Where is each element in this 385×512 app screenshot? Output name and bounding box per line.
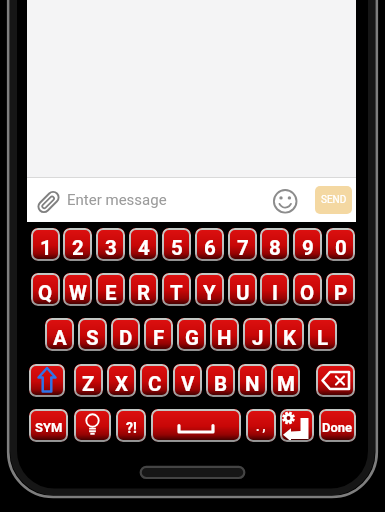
- button[interactable]: [29, 364, 65, 397]
- button[interactable]: S: [78, 318, 107, 351]
- staticText: . ,: [256, 420, 266, 434]
- button[interactable]: 6: [195, 228, 224, 261]
- button[interactable]: [316, 364, 355, 397]
- button[interactable]: 7: [228, 228, 257, 261]
- staticText: 0: [335, 236, 347, 260]
- button[interactable]: P: [326, 273, 355, 306]
- button[interactable]: C: [140, 364, 169, 397]
- button[interactable]: 4: [129, 228, 158, 261]
- staticText: M: [277, 372, 295, 396]
- button[interactable]: 1: [31, 228, 60, 261]
- staticText: 7: [237, 236, 249, 260]
- button[interactable]: SEND: [315, 186, 352, 214]
- button[interactable]: 5: [162, 228, 191, 261]
- staticText: R: [137, 281, 151, 305]
- button[interactable]: Q: [31, 273, 60, 306]
- button[interactable]: X: [107, 364, 136, 397]
- staticText: K: [283, 326, 297, 350]
- button[interactable]: A: [45, 318, 74, 351]
- button[interactable]: V: [173, 364, 202, 397]
- button[interactable]: E: [96, 273, 125, 306]
- staticText: Done: [322, 420, 353, 435]
- button[interactable]: O: [293, 273, 322, 306]
- button[interactable]: . ,: [246, 409, 276, 442]
- staticText: W: [69, 281, 87, 305]
- staticText: SYM: [35, 420, 63, 435]
- staticText: Y: [203, 281, 216, 305]
- staticText: I: [272, 281, 278, 305]
- staticText: D: [119, 326, 133, 350]
- button[interactable]: 0: [326, 228, 355, 261]
- staticText: ?!: [126, 420, 137, 436]
- button[interactable]: [280, 409, 314, 442]
- staticText: T: [170, 281, 183, 305]
- staticText: V: [181, 372, 195, 396]
- button[interactable]: W: [63, 273, 92, 306]
- staticText: L: [317, 326, 329, 350]
- staticText: E: [105, 281, 117, 305]
- button[interactable]: I: [260, 273, 289, 306]
- button[interactable]: H: [210, 318, 239, 351]
- button[interactable]: M: [271, 364, 300, 397]
- staticText: Z: [82, 372, 95, 396]
- staticText: X: [115, 372, 129, 396]
- staticText: 2: [72, 236, 84, 260]
- staticText: P: [334, 281, 348, 305]
- staticText: 4: [138, 236, 150, 260]
- button[interactable]: Enter message: [27, 178, 356, 222]
- staticText: Enter message: [67, 191, 167, 209]
- button[interactable]: Z: [74, 364, 103, 397]
- staticText: N: [245, 372, 260, 396]
- staticText: F: [153, 326, 165, 350]
- button[interactable]: B: [206, 364, 235, 397]
- button[interactable]: K: [275, 318, 304, 351]
- button[interactable]: D: [111, 318, 140, 351]
- button[interactable]: SYM: [29, 409, 68, 442]
- staticText: Q: [38, 281, 53, 305]
- staticText: 1: [40, 236, 52, 260]
- staticText: C: [148, 372, 162, 396]
- button[interactable]: U: [228, 273, 257, 306]
- button[interactable]: N: [238, 364, 267, 397]
- button[interactable]: 9: [293, 228, 322, 261]
- staticText: 8: [269, 236, 281, 260]
- staticText: 3: [105, 236, 117, 260]
- staticText: J: [252, 326, 264, 350]
- staticText: G: [185, 326, 199, 350]
- button[interactable]: [74, 409, 111, 442]
- staticText: 6: [204, 236, 216, 260]
- button[interactable]: ?!: [116, 409, 146, 442]
- staticText: SEND: [321, 194, 347, 206]
- button[interactable]: L: [308, 318, 337, 351]
- staticText: S: [86, 326, 99, 350]
- button[interactable]: [151, 409, 241, 442]
- staticText: B: [214, 372, 228, 396]
- button[interactable]: G: [177, 318, 206, 351]
- button[interactable]: Done: [319, 409, 356, 442]
- button[interactable]: 2: [63, 228, 92, 261]
- button[interactable]: R: [129, 273, 158, 306]
- staticText: 9: [302, 236, 314, 260]
- button[interactable]: Y: [195, 273, 224, 306]
- staticText: A: [53, 326, 67, 350]
- button[interactable]: T: [162, 273, 191, 306]
- staticText: O: [300, 281, 315, 305]
- button[interactable]: 3: [96, 228, 125, 261]
- button[interactable]: F: [144, 318, 173, 351]
- button[interactable]: J: [243, 318, 272, 351]
- staticText: H: [217, 326, 232, 350]
- staticText: U: [236, 281, 250, 305]
- staticText: 5: [171, 236, 183, 260]
- button[interactable]: 8: [260, 228, 289, 261]
